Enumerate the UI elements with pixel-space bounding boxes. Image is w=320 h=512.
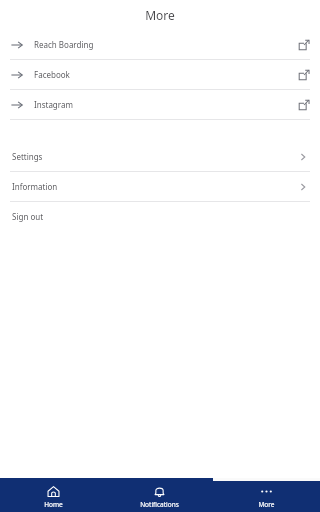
other: Open external link (298, 39, 310, 51)
button[interactable]: Information (0, 172, 320, 201)
staticText: Facebook (34, 69, 70, 80)
staticText: More (145, 7, 175, 23)
button[interactable]: Instagram (0, 90, 320, 119)
staticText: Settings (12, 151, 43, 162)
button[interactable]: Sign out (0, 202, 320, 231)
staticText: Instagram (34, 99, 73, 110)
button[interactable]: Home (0, 481, 106, 512)
button[interactable]: Settings (0, 142, 320, 171)
staticText: Sign out (12, 211, 44, 222)
other: Open external link (298, 99, 310, 111)
staticText: More (258, 500, 275, 509)
other: Open external link (298, 69, 310, 81)
button[interactable]: More (213, 481, 320, 512)
staticText: Information (12, 181, 58, 192)
staticText: Reach Boarding (34, 39, 94, 50)
button[interactable]: Reach Boarding (0, 30, 320, 59)
button[interactable]: Notifications (106, 481, 213, 512)
staticText: Home (44, 500, 63, 509)
staticText: Notifications (140, 500, 179, 509)
button[interactable]: Facebook (0, 60, 320, 89)
